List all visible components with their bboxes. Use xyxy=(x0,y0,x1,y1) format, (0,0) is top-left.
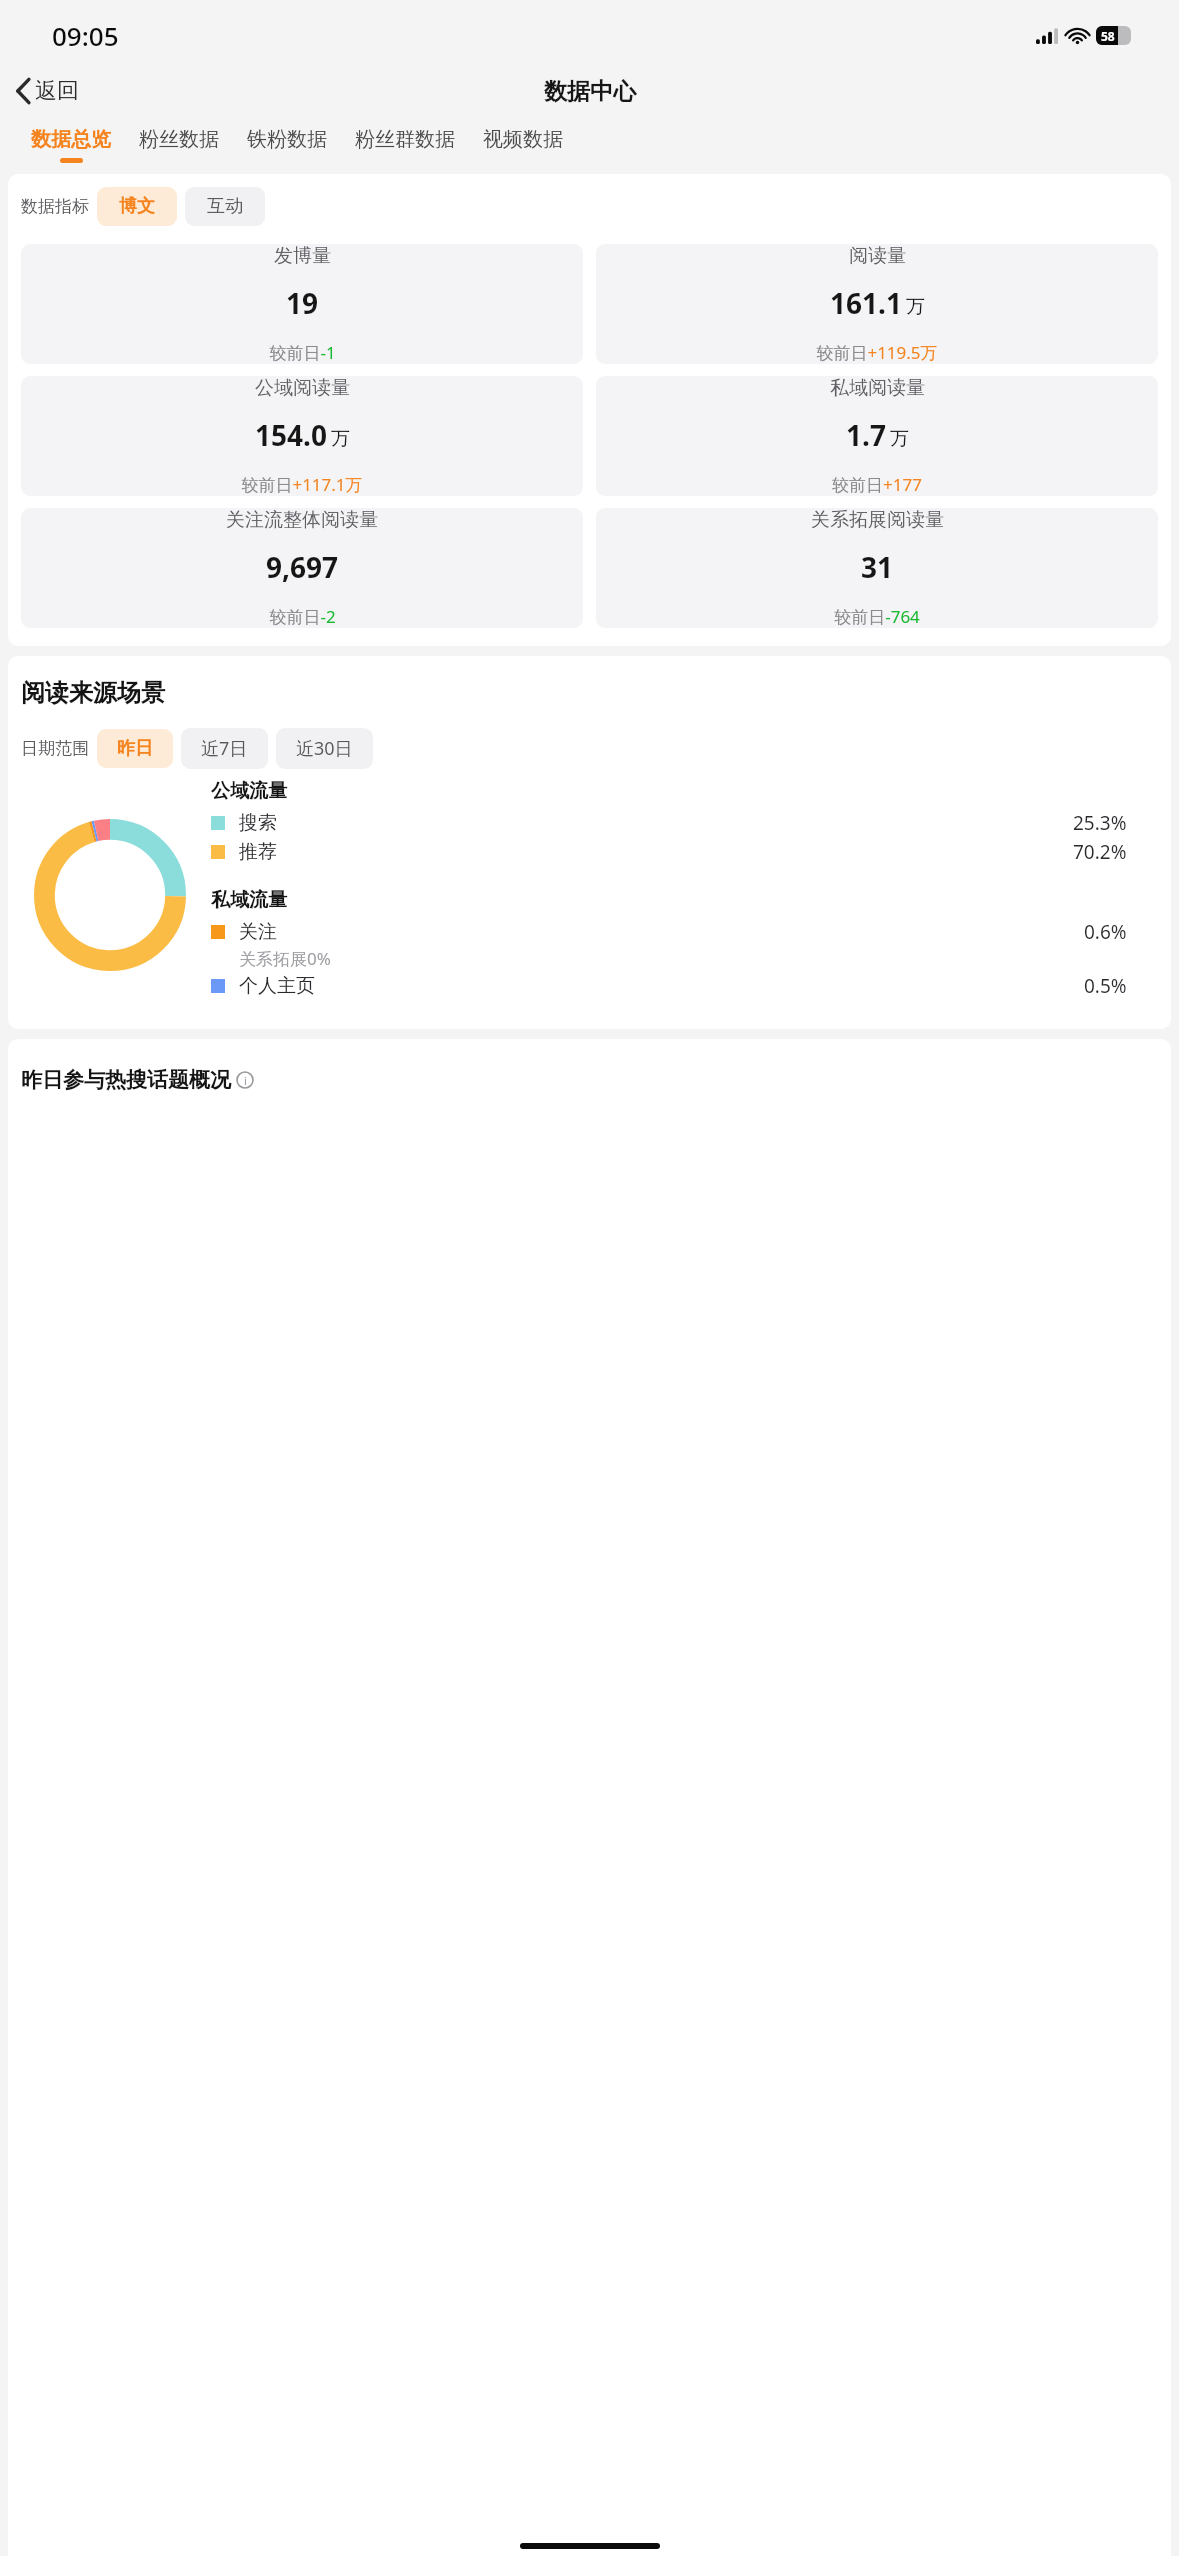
staticText: 数据中心 xyxy=(544,77,636,106)
button[interactable]: 返回 xyxy=(10,71,85,111)
staticText: 数据指标 xyxy=(21,196,89,217)
staticText: 粉丝群数据 xyxy=(355,127,455,152)
staticText: 0.6% xyxy=(1084,919,1127,945)
staticText: 昨日 xyxy=(117,737,153,760)
staticText: 铁粉数据 xyxy=(247,127,327,152)
staticText: i xyxy=(244,1073,247,1088)
staticText: 阅读来源场景 xyxy=(21,678,165,708)
button[interactable]: 博文 xyxy=(97,187,177,226)
button[interactable]: 互动 xyxy=(185,187,265,226)
button[interactable]: 私域阅读量 xyxy=(596,376,1158,496)
staticText: 万 xyxy=(331,427,350,451)
button[interactable]: 关注流整体阅读量 xyxy=(21,508,583,628)
staticText: 数据总览 xyxy=(31,127,111,152)
button[interactable]: 关系拓展阅读量 xyxy=(596,508,1158,628)
staticText: 31 xyxy=(861,548,894,586)
staticText: 私域流量 xyxy=(211,888,287,912)
staticText: 公域流量 xyxy=(211,779,287,803)
staticText: 161.1 xyxy=(830,284,902,322)
staticText: 58 xyxy=(1101,28,1115,44)
staticText: 互动 xyxy=(207,195,243,218)
button[interactable]: 近7日 xyxy=(181,728,268,769)
staticText: 私域阅读量 xyxy=(830,376,925,400)
staticText: 较前日-2 xyxy=(269,605,336,628)
staticText: 近7日 xyxy=(201,736,248,761)
staticText: 25.3% xyxy=(1073,810,1127,836)
staticText: 个人主页 xyxy=(239,974,315,998)
staticText: 推荐 xyxy=(239,840,277,864)
button[interactable]: 粉丝群数据 xyxy=(341,127,469,163)
staticText: 搜索 xyxy=(239,811,277,835)
button[interactable]: 阅读量 xyxy=(596,244,1158,364)
staticText: 返回 xyxy=(35,77,79,105)
staticText: 关系拓展阅读量 xyxy=(811,508,944,532)
button[interactable]: 公域阅读量 xyxy=(21,376,583,496)
staticText: 关注 xyxy=(239,920,277,944)
staticText: 9,697 xyxy=(266,548,339,586)
button[interactable]: 近30日 xyxy=(276,728,373,769)
staticText: 博文 xyxy=(119,195,155,218)
staticText: 1.7 xyxy=(846,416,886,454)
staticText: 19 xyxy=(286,284,319,322)
staticText: 万 xyxy=(906,295,925,319)
button[interactable]: 昨日 xyxy=(97,729,173,768)
staticText: 较前日+177 xyxy=(832,473,922,496)
staticText: 公域阅读量 xyxy=(255,376,350,400)
button[interactable]: 视频数据 xyxy=(469,127,577,163)
button[interactable]: 数据总览 xyxy=(17,127,125,163)
staticText: 较前日+117.1万 xyxy=(241,473,363,496)
staticText: 昨日参与热搜话题概况 xyxy=(21,1067,231,1093)
staticText: 较前日-1 xyxy=(269,341,336,364)
button[interactable]: 发博量 xyxy=(21,244,583,364)
staticText: 0.5% xyxy=(1084,973,1127,999)
staticText: 154.0 xyxy=(255,416,327,454)
staticText: 较前日+119.5万 xyxy=(816,341,938,364)
staticText: 较前日-764 xyxy=(834,605,920,628)
button[interactable]: 铁粉数据 xyxy=(233,127,341,163)
staticText: 09:05 xyxy=(52,18,119,53)
staticText: 发博量 xyxy=(274,244,331,268)
button[interactable]: 粉丝数据 xyxy=(125,127,233,163)
staticText: 关注流整体阅读量 xyxy=(226,508,378,532)
staticText: 阅读量 xyxy=(849,244,906,268)
staticText: 70.2% xyxy=(1073,839,1127,865)
staticText: 万 xyxy=(890,427,909,451)
staticText: 粉丝数据 xyxy=(139,127,219,152)
staticText: 近30日 xyxy=(296,736,353,761)
staticText: 关系拓展0% xyxy=(239,947,331,970)
staticText: 视频数据 xyxy=(483,127,563,152)
staticText: 日期范围 xyxy=(21,738,89,759)
